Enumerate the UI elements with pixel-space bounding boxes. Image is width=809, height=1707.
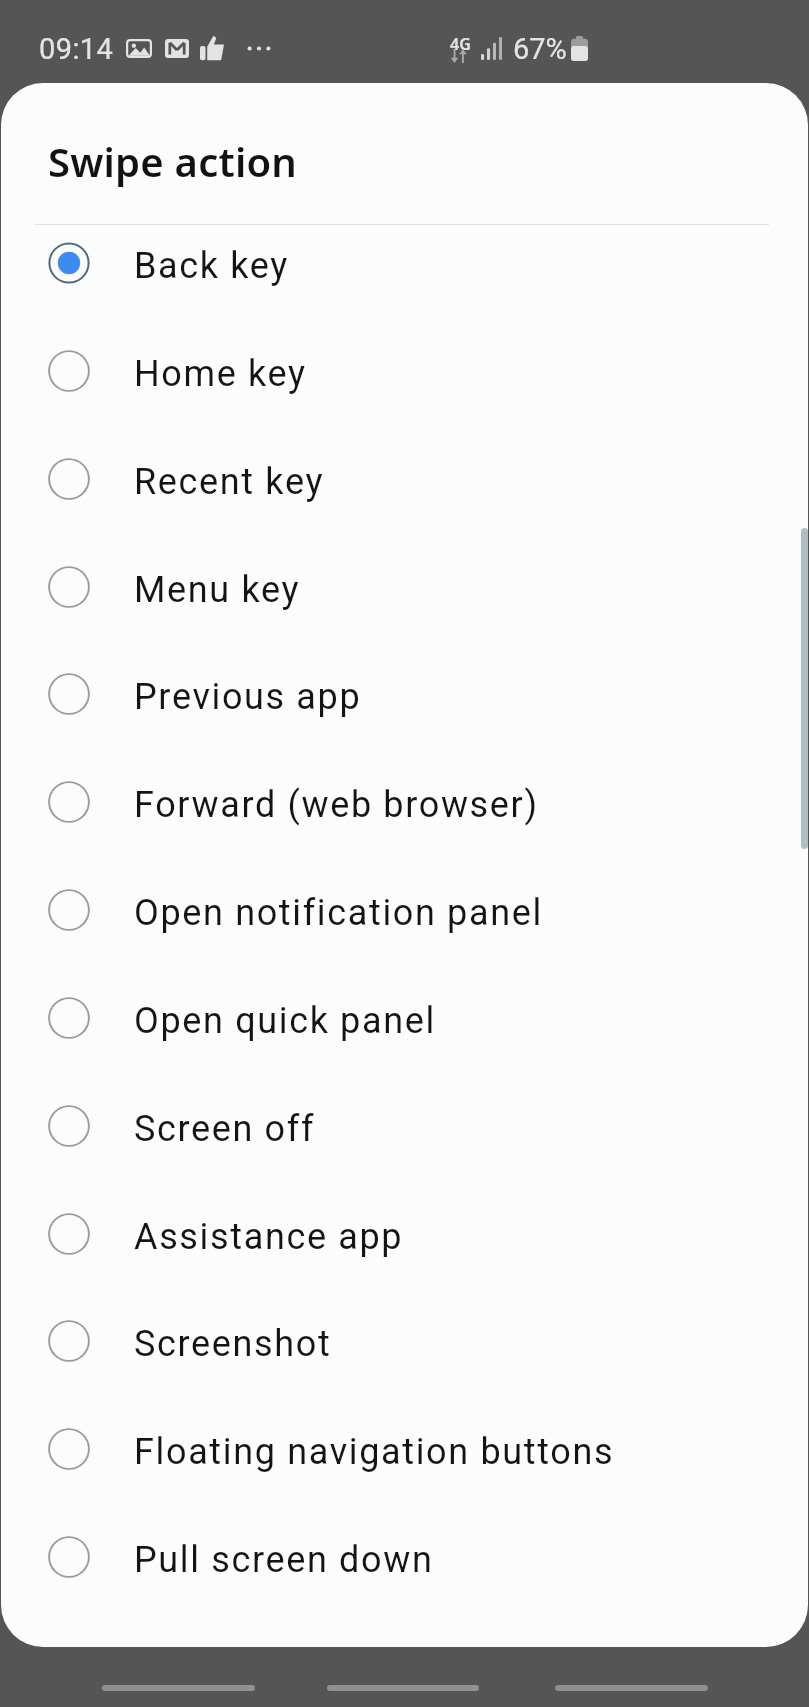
staticText: Home key (134, 353, 307, 395)
staticText: 67% (513, 32, 567, 66)
staticText: Recent key (134, 461, 325, 503)
staticText: Screenshot (134, 1323, 332, 1365)
staticText: Floating navigation buttons (134, 1431, 615, 1473)
button[interactable]: Forward (web browser) (1, 748, 808, 856)
staticText: Previous app (134, 676, 362, 718)
staticText: Swipe action (48, 134, 297, 188)
staticText: Forward (web browser) (134, 784, 539, 826)
button[interactable]: Pull screen down (1, 1503, 808, 1611)
staticText: 4G (450, 33, 471, 55)
staticText: Open quick panel (134, 1000, 436, 1042)
staticText: Assistance app (134, 1216, 404, 1258)
staticText: Open notification panel (134, 892, 543, 934)
button[interactable]: Back key (1, 209, 808, 317)
staticText: Back key (134, 245, 290, 287)
button[interactable]: Home key (1, 317, 808, 425)
button[interactable]: Recent key (1, 425, 808, 533)
button[interactable]: Recents (102, 1663, 255, 1707)
staticText: 09:14 (39, 32, 114, 66)
staticText: Screen off (134, 1108, 316, 1150)
button[interactable]: Screen off (1, 1072, 808, 1180)
button[interactable]: Floating navigation buttons (1, 1395, 808, 1503)
button[interactable]: Home (327, 1663, 479, 1707)
button[interactable]: Open quick panel (1, 964, 808, 1072)
button[interactable]: Menu key (1, 533, 808, 641)
button[interactable]: Back (555, 1663, 708, 1707)
button[interactable]: Assistance app (1, 1180, 808, 1288)
button[interactable]: Open notification panel (1, 856, 808, 964)
staticText: Pull screen down (134, 1539, 434, 1581)
button[interactable]: Screenshot (1, 1287, 808, 1395)
staticText: Menu key (134, 569, 301, 611)
button[interactable]: Previous app (1, 640, 808, 748)
